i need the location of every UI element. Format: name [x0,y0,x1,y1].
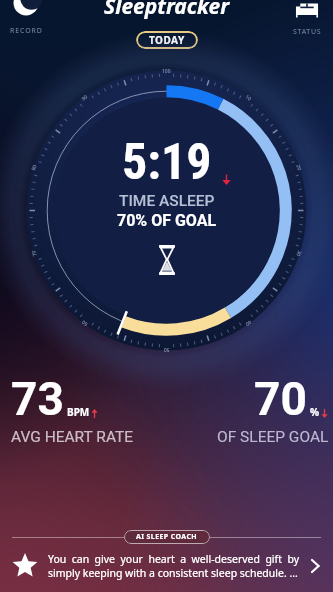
staticText: Sleeptracker [104,0,230,21]
staticText: TODAY [149,33,185,47]
staticText: 73 [11,372,64,426]
other: Record [13,0,39,16]
staticText: % [310,405,320,419]
staticText: BPM [67,405,90,419]
staticText: RECORD [10,26,43,36]
staticText: AVG HEART RATE [11,428,134,446]
other: Status [295,0,319,17]
staticText: OF SLEEP GOAL [217,428,329,446]
staticText: TIME ASLEEP [119,192,215,210]
staticText: AI SLEEP COACH [136,532,198,542]
other: Open coach tip [305,556,325,576]
button[interactable]: You can give your heart a well-deserved … [0,546,333,586]
staticText: You can give your heart a well-deserved … [48,552,299,580]
staticText: 70% OF GOAL [117,211,217,230]
staticText: 5:19 [122,133,212,192]
button[interactable]: AI SLEEP COACH [124,530,210,544]
button[interactable]: Status [281,0,333,36]
button[interactable]: TODAY [136,31,198,49]
button[interactable]: Record [0,0,52,36]
staticText: 70 [254,372,307,426]
staticText: STATUS [293,27,322,37]
